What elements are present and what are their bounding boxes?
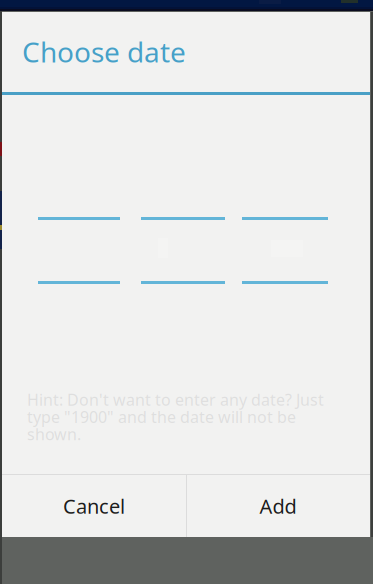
staticText: Add (259, 493, 296, 519)
staticText: type "1900" and the date will not be (27, 406, 296, 427)
button[interactable]: Cancel (2, 475, 186, 537)
staticText: Choose date (22, 33, 186, 70)
button[interactable]: Add (186, 475, 370, 537)
staticText: Hint: Don't want to enter any date? Just (27, 389, 324, 410)
staticText: Cancel (63, 493, 125, 519)
staticText: shown. (27, 423, 81, 445)
